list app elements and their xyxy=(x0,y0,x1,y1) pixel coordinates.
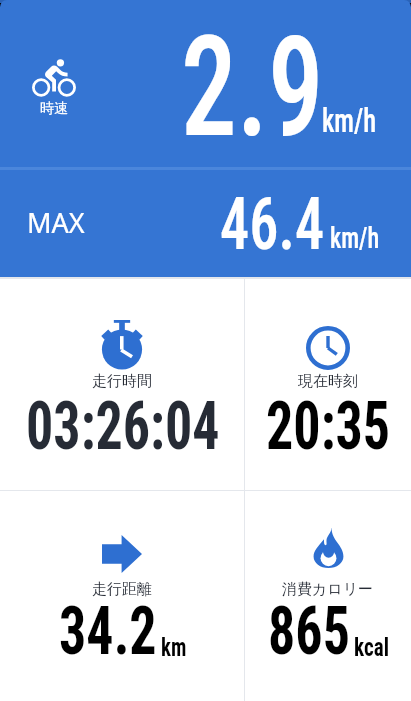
button[interactable]: 走行距離 xyxy=(0,491,244,701)
button[interactable]: Current speed xyxy=(0,0,411,277)
staticText: 865 xyxy=(268,591,350,670)
staticText: km/h xyxy=(330,220,380,255)
staticText: 走行時間 xyxy=(92,372,152,391)
staticText: 2.9 xyxy=(181,6,324,169)
staticText: 現在時刻 xyxy=(298,372,358,391)
other: Current speed xyxy=(32,59,76,97)
other: 走行時間 xyxy=(99,320,145,370)
staticText: MAX xyxy=(27,204,85,241)
staticText: 03:26:04 xyxy=(26,386,220,465)
other: 走行距離 xyxy=(102,535,142,573)
staticText: 46.4 xyxy=(220,181,325,267)
button[interactable]: 現在時刻 xyxy=(245,279,411,490)
other: 現在時刻 xyxy=(306,326,350,370)
staticText: 時速 xyxy=(40,100,68,118)
staticText: km xyxy=(161,632,187,662)
button[interactable]: 走行時間 xyxy=(0,279,244,490)
other: 消費カロリー xyxy=(313,528,344,568)
button[interactable]: 消費カロリー xyxy=(245,491,411,701)
staticText: kcal xyxy=(354,631,389,662)
staticText: km/h xyxy=(322,101,376,140)
staticText: 消費カロリー xyxy=(282,580,374,599)
staticText: 20:35 xyxy=(266,386,391,465)
staticText: 34.2 xyxy=(59,591,157,670)
staticText: 走行距離 xyxy=(92,580,152,599)
